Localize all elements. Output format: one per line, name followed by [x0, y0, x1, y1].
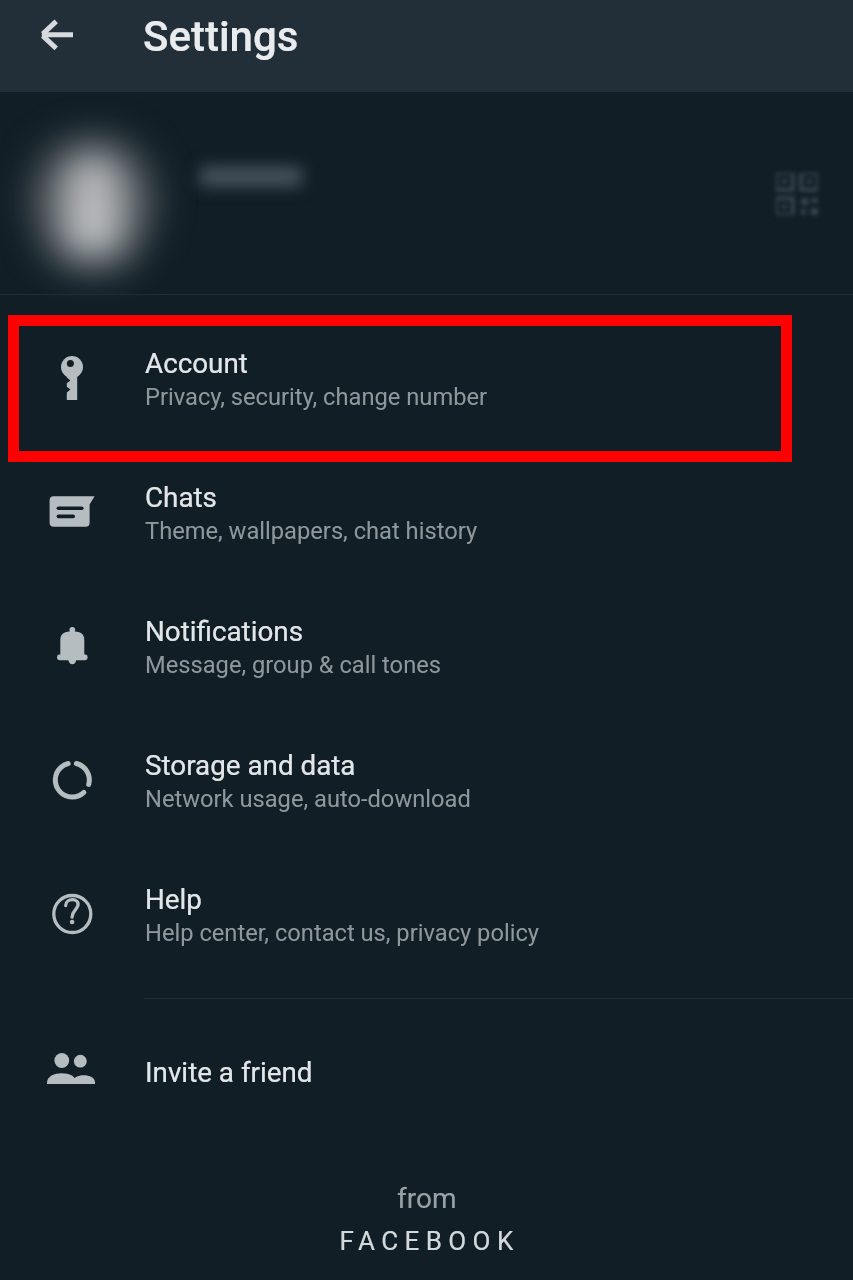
staticText: Invite a friend: [145, 1056, 313, 1089]
button[interactable]: Chats: [0, 445, 853, 579]
staticText: Help center, contact us, privacy policy: [145, 919, 540, 947]
button[interactable]: Help: [0, 847, 853, 981]
button[interactable]: Back: [18, 0, 94, 70]
staticText: Notifications: [145, 615, 304, 648]
staticText: from: [397, 1182, 457, 1215]
staticText: FACEBOOK: [339, 1226, 520, 1256]
button[interactable]: Notifications: [0, 579, 853, 713]
staticText: Privacy, security, change number: [145, 383, 488, 411]
button[interactable]: QR code: [0, 92, 853, 293]
staticText: Storage and data: [145, 749, 356, 782]
button[interactable]: QR code: [761, 158, 833, 230]
button[interactable]: Account: [0, 311, 853, 445]
staticText: Message, group & call tones: [145, 651, 442, 679]
staticText: Theme, wallpapers, chat history: [145, 517, 478, 545]
staticText: Chats: [145, 481, 217, 514]
button[interactable]: Invite a friend: [0, 1004, 853, 1138]
button[interactable]: Storage and data: [0, 713, 853, 847]
staticText: Network usage, auto-download: [145, 785, 471, 813]
staticText: Help: [145, 883, 202, 916]
staticText: Account: [145, 347, 248, 380]
staticText: Settings: [143, 12, 299, 61]
